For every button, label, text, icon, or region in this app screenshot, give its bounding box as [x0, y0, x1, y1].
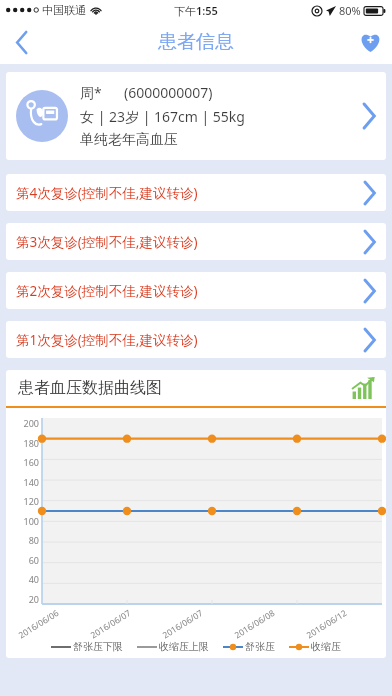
staticText: 下午1:55	[174, 3, 218, 18]
staticText: 第3次复诊(控制不佳,建议转诊)	[16, 233, 198, 251]
staticText: 第1次复诊(控制不佳,建议转诊)	[16, 331, 198, 349]
staticText: 60	[28, 554, 39, 564]
button[interactable]: Add patient	[348, 20, 392, 64]
staticText: 80	[28, 534, 39, 544]
staticText: 200	[23, 417, 39, 427]
staticText: 40	[28, 573, 39, 583]
staticText: 患者信息	[158, 30, 234, 54]
button[interactable]: 第2次复诊(控制不佳,建议转诊)	[6, 272, 386, 309]
staticText: 20	[28, 593, 39, 603]
staticText: 100	[23, 515, 39, 525]
staticText: 第2次复诊(控制不佳,建议转诊)	[16, 282, 198, 300]
staticText: 收缩压上限	[159, 640, 209, 653]
staticText: 舒张压下限	[73, 640, 123, 653]
staticText: 女 | 23岁 | 167cm | 55kg	[80, 107, 245, 126]
staticText: 2016/06/07	[88, 607, 134, 641]
staticText: 第4次复诊(控制不佳,建议转诊)	[16, 184, 198, 202]
button[interactable]: 第3次复诊(控制不佳,建议转诊)	[6, 223, 386, 260]
button[interactable]: Back	[0, 20, 44, 64]
button[interactable]: 第4次复诊(控制不佳,建议转诊)	[6, 174, 386, 211]
staticText: 120	[23, 495, 39, 505]
staticText: 2016/06/12	[304, 607, 350, 641]
staticText: 80%	[339, 3, 361, 18]
staticText: 160	[23, 456, 39, 466]
staticText: 180	[23, 437, 39, 447]
staticText: 患者血压数据曲线图	[18, 378, 162, 398]
staticText: 2016/06/06	[16, 607, 62, 641]
staticText: 2016/06/08	[232, 607, 278, 641]
button[interactable]: 第1次复诊(控制不佳,建议转诊)	[6, 321, 386, 358]
staticText: 单纯老年高血压	[80, 131, 178, 149]
button[interactable]: 周*	[6, 72, 386, 160]
staticText: (6000000007)	[124, 83, 213, 102]
staticText: 周*	[80, 83, 102, 102]
staticText: 中国联通	[42, 3, 86, 17]
staticText: 2016/06/07	[160, 607, 206, 641]
staticText: 收缩压	[311, 640, 341, 653]
staticText: 舒张压	[245, 640, 275, 653]
staticText: 140	[23, 476, 39, 486]
